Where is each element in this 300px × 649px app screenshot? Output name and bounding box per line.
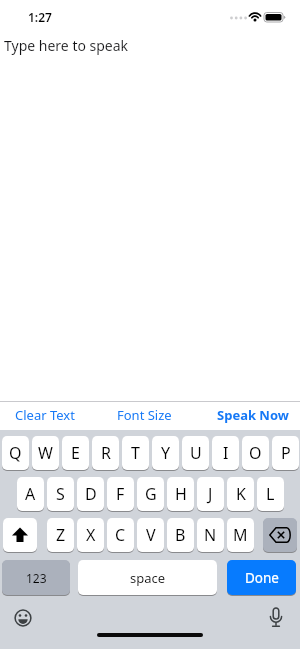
button[interactable]: Q [2,436,29,470]
staticText: T [131,442,140,464]
staticText: M [233,524,248,546]
button[interactable]: J [197,477,224,511]
staticText: I [223,442,229,464]
button[interactable]: N [197,518,224,552]
button[interactable]: P [272,436,299,470]
button[interactable]: O [242,436,269,470]
staticText: V [146,524,156,546]
staticText: S [56,483,65,505]
button[interactable]: F [107,477,134,511]
staticText: K [236,483,246,505]
button[interactable]: Z [47,518,74,552]
staticText: C [115,524,126,546]
button[interactable]: Clear Text [0,401,60,419]
staticText: O [249,442,262,464]
button[interactable]: Font Size [0,401,55,419]
button[interactable]: W [32,436,59,470]
staticText: Done [245,569,279,587]
staticText: P [281,442,291,464]
button[interactable] [268,607,284,629]
staticText: X [86,524,96,546]
button[interactable] [14,609,32,627]
button[interactable]: H [167,477,194,511]
button[interactable]: M [227,518,254,552]
staticText: D [85,483,97,505]
staticText: W [38,442,53,464]
button[interactable]: T [122,436,149,470]
staticText: 123 [26,570,47,586]
button[interactable]: K [227,477,254,511]
staticText: Y [161,442,171,464]
staticText: A [25,483,36,505]
button[interactable] [3,518,37,552]
staticText: J [208,483,213,505]
staticText: R [101,442,111,464]
button[interactable]: E [62,436,89,470]
button[interactable]: R [92,436,119,470]
button[interactable]: Speak Now [0,401,72,419]
button[interactable]: C [107,518,134,552]
staticText: 1:27 [28,9,52,25]
staticText: F [116,483,125,505]
button[interactable]: V [137,518,164,552]
button[interactable]: I [212,436,239,470]
staticText: H [175,483,187,505]
button[interactable]: Done [227,560,296,595]
button[interactable]: L [257,477,284,511]
staticText: G [145,483,157,505]
staticText: Type here to speak [4,36,129,55]
button[interactable]: B [167,518,194,552]
button[interactable]: Y [152,436,179,470]
staticText: B [175,524,186,546]
staticText: Q [9,442,22,464]
button[interactable]: A [17,477,44,511]
staticText: E [71,442,80,464]
button[interactable]: S [47,477,74,511]
button[interactable] [263,518,297,552]
staticText: N [204,524,217,546]
button[interactable]: X [77,518,104,552]
button[interactable]: U [182,436,209,470]
button[interactable]: space [78,560,217,595]
button[interactable]: D [77,477,104,511]
button[interactable]: G [137,477,164,511]
button[interactable]: 123 [2,560,70,595]
staticText: Z [56,524,66,546]
staticText: space [130,569,166,587]
staticText: U [190,442,202,464]
staticText: L [266,483,275,505]
